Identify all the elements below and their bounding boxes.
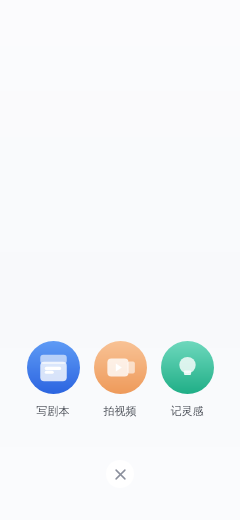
- staticText: 记灵感: [154, 404, 220, 418]
- button[interactable]: 写剧本: [20, 336, 86, 418]
- button[interactable]: 记灵感: [154, 336, 220, 418]
- button[interactable]: 关闭: [106, 460, 134, 488]
- staticText: 拍视频: [87, 404, 153, 418]
- staticText: 写剧本: [20, 404, 86, 418]
- button[interactable]: 拍视频: [87, 336, 153, 418]
